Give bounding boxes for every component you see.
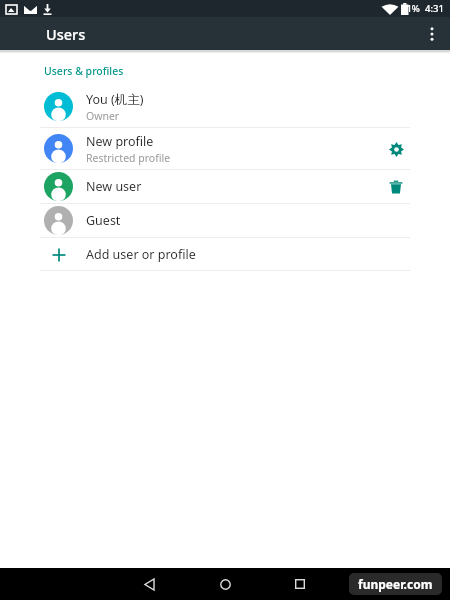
button[interactable]: Recent apps [284, 568, 316, 600]
staticText: 4:31 [425, 2, 444, 15]
button[interactable]: More options [414, 17, 450, 50]
button[interactable]: Add user or profile [0, 238, 450, 270]
button[interactable]: Remove user [380, 171, 412, 203]
staticText: Restricted profile [86, 151, 171, 165]
staticText: Owner [86, 109, 120, 123]
staticText: Add user or profile [86, 246, 196, 263]
button[interactable]: You (机主) [0, 86, 450, 127]
staticText: You (机主) [86, 91, 144, 108]
staticText: Users & profiles [44, 64, 124, 78]
button[interactable]: Profile settings [380, 133, 412, 165]
staticText: New profile [86, 133, 154, 150]
staticText: New user [86, 178, 142, 195]
staticText: Users [46, 24, 86, 44]
button[interactable]: Back [134, 568, 166, 600]
button[interactable]: New profile [0, 128, 450, 169]
button[interactable]: New user [0, 170, 450, 203]
staticText: 91% [401, 2, 420, 15]
staticText: funpeer.com [358, 576, 433, 592]
button[interactable]: Guest [0, 204, 450, 237]
button[interactable]: Home [209, 568, 241, 600]
staticText: Guest [86, 212, 121, 229]
